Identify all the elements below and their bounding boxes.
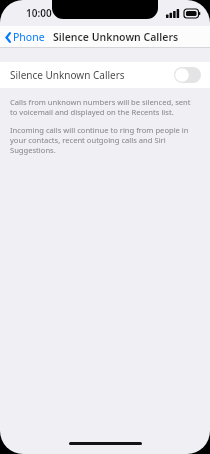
staticText: Calls from unknown numbers will be silen… xyxy=(10,97,198,117)
staticText: Silence Unknown Callers xyxy=(10,68,125,82)
staticText: Silence Unknown Callers xyxy=(53,30,179,44)
staticText: Phone xyxy=(13,30,45,44)
button[interactable]: Silence Unknown Callers xyxy=(0,62,210,88)
staticText: Incoming calls will continue to ring fro… xyxy=(10,125,198,155)
button[interactable]: Silence Unknown Callers toggle, off xyxy=(174,67,201,83)
staticText: 10:00 xyxy=(26,6,52,20)
button[interactable]: Phone xyxy=(0,27,49,47)
